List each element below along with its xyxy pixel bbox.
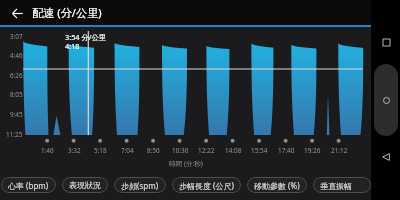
staticText: 6:26 — [10, 71, 23, 80]
staticText: 步幅長度 (公尺) — [179, 180, 234, 191]
staticText: 21:12 — [331, 146, 348, 155]
staticText: 15:54 — [251, 146, 268, 155]
staticText: 1:46 — [41, 146, 54, 155]
staticText: 8:05 — [10, 90, 23, 99]
button[interactable]: 表現狀況 — [62, 177, 108, 193]
button[interactable]: 心率 (bpm) — [1, 177, 56, 193]
staticText: 12:22 — [198, 146, 215, 155]
staticText: 11:25 — [6, 130, 23, 139]
button[interactable]: Back — [6, 2, 28, 24]
staticText: 垂直振幅 (公分) — [320, 180, 364, 191]
staticText: 7:04 — [121, 146, 134, 155]
staticText: 3:07 — [10, 32, 23, 41]
staticText: 10:36 — [172, 146, 189, 155]
staticText: 4:46 — [10, 51, 23, 60]
staticText: 移動參數 (%) — [254, 180, 300, 191]
staticText: 8:50 — [147, 146, 160, 155]
staticText: 19:26 — [304, 146, 321, 155]
staticText: 表現狀況 — [69, 180, 101, 190]
button[interactable]: 垂直振幅 (公分) — [313, 177, 371, 193]
staticText: 3:32 — [68, 146, 81, 155]
staticText: 3:54 分/公里 — [65, 32, 106, 42]
staticText: 5:18 — [94, 146, 107, 155]
button[interactable]: Home — [374, 64, 398, 136]
button[interactable]: 步頻(spm) — [114, 177, 166, 193]
staticText: 時間 (分:秒) — [169, 159, 203, 168]
button[interactable]: Recent apps — [379, 35, 393, 49]
staticText: 14:08 — [225, 146, 242, 155]
staticText: 17:40 — [278, 146, 295, 155]
staticText: 心率 (bpm) — [8, 180, 49, 191]
staticText: 步頻(spm) — [121, 180, 159, 191]
staticText: 9:45 — [10, 110, 23, 119]
staticText: 4:18 — [65, 41, 80, 51]
staticText: 配速 (分/公里) — [32, 5, 102, 20]
button[interactable]: 移動參數 (%) — [247, 177, 307, 193]
button[interactable]: Back — [379, 150, 393, 164]
button[interactable]: 步幅長度 (公尺) — [172, 177, 241, 193]
